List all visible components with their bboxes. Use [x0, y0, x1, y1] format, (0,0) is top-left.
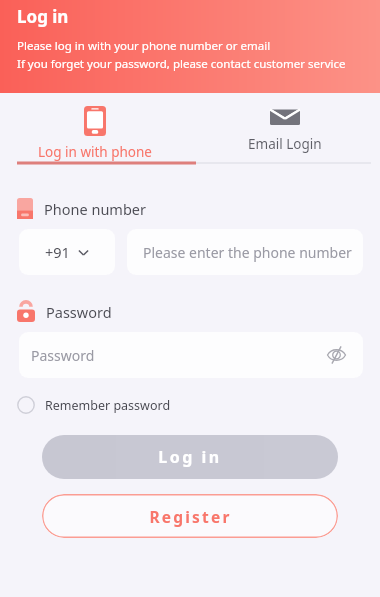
button[interactable]: Register	[42, 494, 338, 538]
button[interactable]: Show password	[323, 342, 349, 368]
staticText: Email Login	[248, 135, 322, 153]
staticText: Password	[46, 302, 112, 322]
staticText: Log in	[158, 446, 222, 468]
other: Phone	[84, 106, 106, 136]
button[interactable]: +91	[19, 229, 115, 275]
staticText: Phone number	[44, 199, 146, 219]
staticText: +91	[45, 242, 70, 262]
button[interactable]: Log in	[42, 435, 338, 479]
staticText: Log in with phone	[38, 143, 152, 161]
staticText: Password	[31, 346, 95, 365]
other: Email	[270, 106, 300, 128]
button[interactable]: Password	[19, 332, 363, 378]
staticText: Log in	[17, 5, 69, 28]
button[interactable]: Email	[190, 93, 380, 153]
button[interactable]: Phone	[0, 93, 190, 161]
staticText: Remember password	[45, 397, 171, 414]
button[interactable]: Remember password	[17, 396, 380, 414]
staticText: Register	[149, 506, 232, 527]
button[interactable]: Please enter the phone number	[127, 229, 363, 275]
staticText: If you forget your password, please cont…	[17, 56, 346, 72]
staticText: Please enter the phone number	[143, 243, 352, 262]
staticText: Please log in with your phone number or …	[17, 38, 271, 54]
